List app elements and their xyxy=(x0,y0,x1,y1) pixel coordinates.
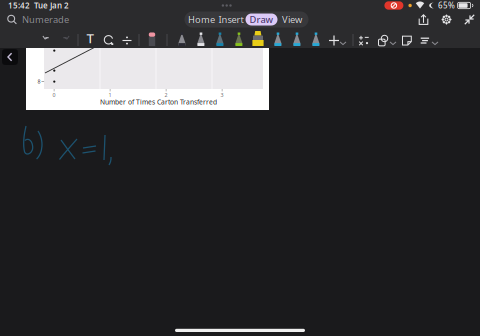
button[interactable]: Pen six xyxy=(292,32,301,46)
button[interactable]: Pen seven xyxy=(311,32,320,46)
staticText: View xyxy=(282,13,302,26)
staticText: Home xyxy=(188,13,215,26)
button[interactable]: Redo xyxy=(59,35,70,46)
button[interactable]: Highlighter xyxy=(252,31,264,46)
staticText: Numerade xyxy=(22,13,69,26)
staticText: Number of Times Carton Transferred xyxy=(100,97,217,106)
staticText: 1 xyxy=(108,91,111,99)
button[interactable]: Settings xyxy=(439,11,454,28)
button[interactable]: Green pen xyxy=(234,32,243,46)
button[interactable]: Ruler xyxy=(419,35,430,46)
button[interactable]: Undo xyxy=(41,35,52,46)
button[interactable]: Share xyxy=(416,11,431,28)
staticText: 3 xyxy=(220,91,223,99)
button[interactable]: Insert xyxy=(216,13,245,25)
button[interactable]: Back xyxy=(2,49,18,65)
button[interactable]: Draw xyxy=(245,13,277,25)
button[interactable]: Sticky note xyxy=(401,35,412,46)
button[interactable]: View xyxy=(277,13,306,25)
button[interactable]: Text xyxy=(82,30,98,46)
staticText: 15:42 xyxy=(8,0,30,11)
staticText: Draw xyxy=(249,13,273,26)
button[interactable]: Pen five xyxy=(273,32,282,46)
button[interactable]: Add tool xyxy=(328,35,339,46)
button[interactable]: Symbols xyxy=(358,35,369,46)
staticText: Tue Jan 2 xyxy=(34,0,69,11)
button[interactable]: Numerade xyxy=(0,12,77,27)
button[interactable]: Blue pen xyxy=(215,32,224,46)
staticText: Insert xyxy=(218,13,243,26)
button[interactable]: Collapse toolbar xyxy=(462,11,477,28)
staticText: 8 xyxy=(37,78,40,85)
button[interactable]: Math xyxy=(121,35,132,46)
button[interactable]: Shapes xyxy=(377,35,388,46)
button[interactable]: Eraser xyxy=(149,32,155,46)
staticText: 2 xyxy=(164,91,167,99)
button[interactable]: Lasso select xyxy=(103,35,114,46)
button[interactable]: Home xyxy=(186,13,216,25)
button[interactable]: Pencil xyxy=(196,32,205,46)
staticText: 0 xyxy=(52,91,55,99)
staticText: 65% xyxy=(438,0,455,11)
button[interactable]: Pen xyxy=(177,32,186,46)
staticText: T xyxy=(86,29,93,47)
